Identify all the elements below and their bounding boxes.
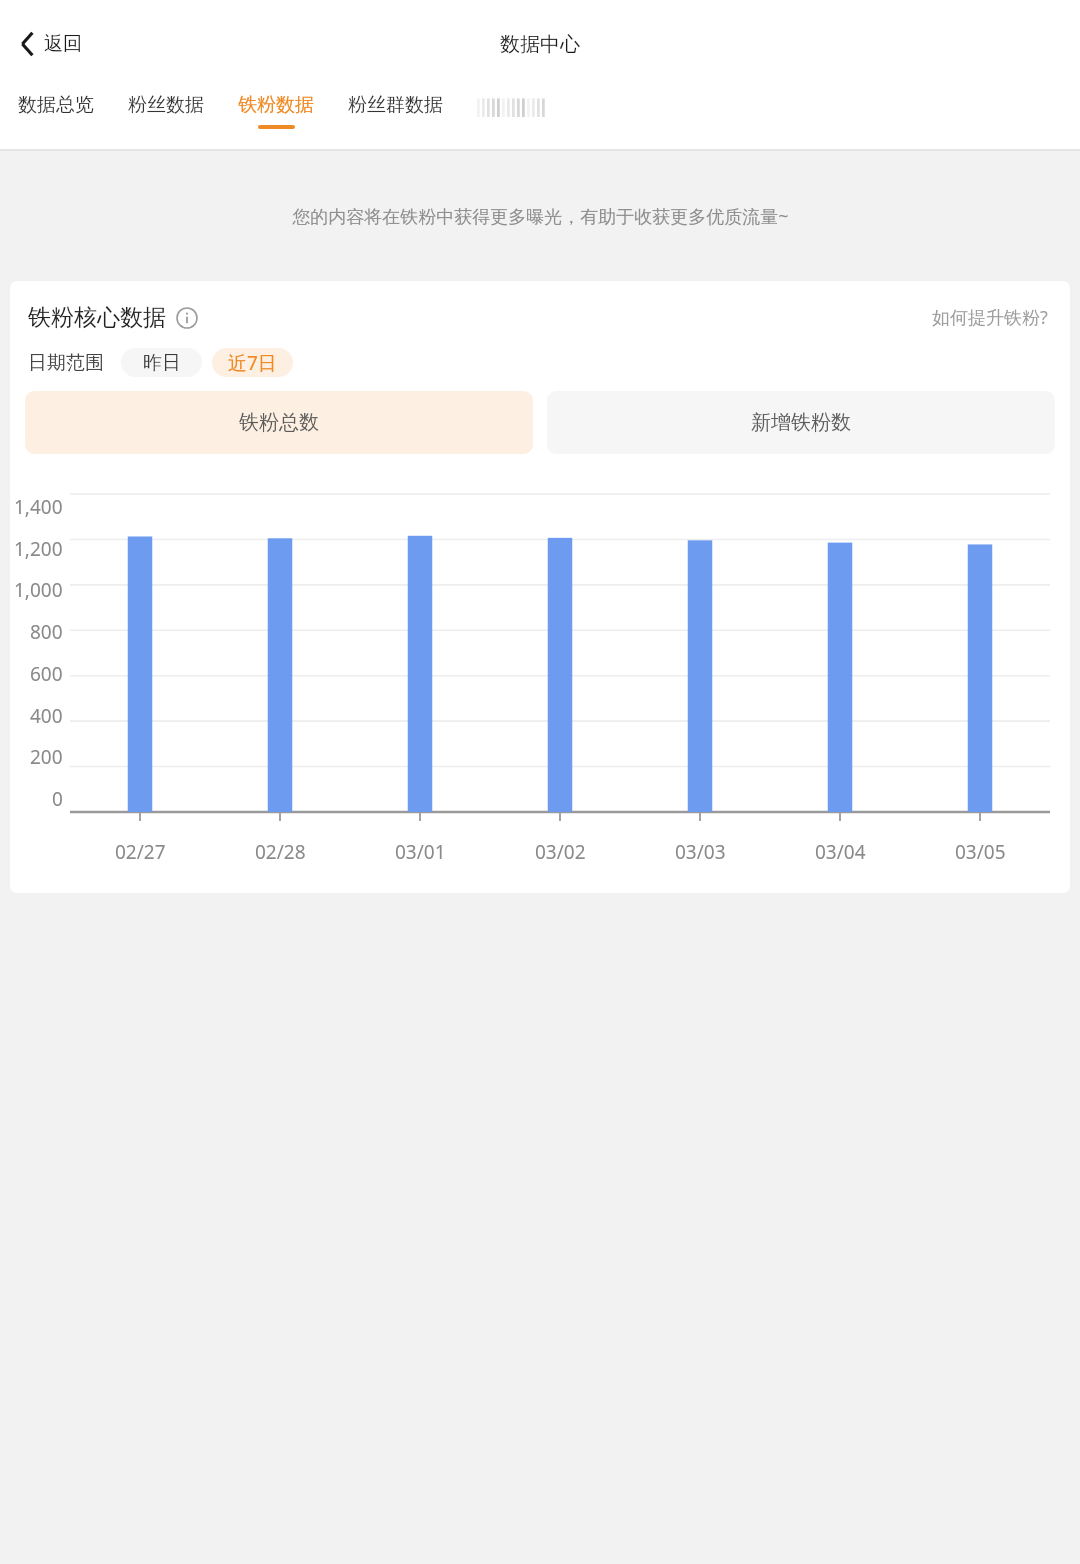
staticText: 600 xyxy=(30,661,63,687)
button[interactable]: 数据总览 xyxy=(14,88,98,125)
staticText: 铁粉数据 xyxy=(238,93,314,117)
staticText: 03/03 xyxy=(675,839,726,865)
staticText: 近7日 xyxy=(228,350,277,376)
staticText: 200 xyxy=(30,744,63,770)
staticText: 03/02 xyxy=(535,839,586,865)
staticText: 新增铁粉数 xyxy=(751,410,851,435)
button[interactable]: 粉丝数据 xyxy=(124,88,208,125)
staticText: 1,000 xyxy=(14,577,63,603)
staticText: 02/28 xyxy=(255,839,306,865)
staticText: 0 xyxy=(52,786,63,812)
staticText: 800 xyxy=(30,619,63,645)
staticText: 1,400 xyxy=(14,494,63,520)
staticText: 数据总览 xyxy=(18,93,94,117)
staticText: 铁粉核心数据 xyxy=(28,303,166,332)
staticText: 02/27 xyxy=(115,839,166,865)
staticText: 1,200 xyxy=(14,536,63,562)
button[interactable]: 如何提升铁粉? xyxy=(928,301,1052,334)
staticText: 03/04 xyxy=(815,839,866,865)
button[interactable]: 新增铁粉数 xyxy=(547,391,1055,454)
staticText: 03/05 xyxy=(955,839,1006,865)
staticText: 您的内容将在铁粉中获得更多曝光，有助于收获更多优质流量~ xyxy=(292,204,789,229)
staticText: 日期范围 xyxy=(28,351,104,375)
button[interactable]: 铁粉总数 xyxy=(25,391,533,454)
staticText: 粉丝群数据 xyxy=(348,93,443,117)
button[interactable]: 更多标签 xyxy=(473,88,551,123)
button[interactable]: 粉丝群数据 xyxy=(344,88,447,125)
button[interactable]: 说明 xyxy=(174,305,200,331)
staticText: 数据中心 xyxy=(500,32,580,57)
staticText: 铁粉总数 xyxy=(239,410,319,435)
staticText: 400 xyxy=(30,703,63,729)
staticText: 03/01 xyxy=(395,839,446,865)
staticText: 粉丝数据 xyxy=(128,93,204,117)
button[interactable]: 昨日 xyxy=(121,348,202,377)
button[interactable]: 返回 xyxy=(10,24,90,64)
staticText: 如何提升铁粉? xyxy=(932,305,1048,330)
staticText: 返回 xyxy=(44,32,82,56)
button[interactable]: 铁粉数据 xyxy=(234,88,318,129)
button[interactable]: 近7日 xyxy=(212,348,293,377)
staticText: 昨日 xyxy=(143,351,181,375)
